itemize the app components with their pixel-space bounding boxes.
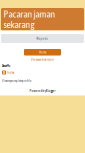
staticText: sekarang [3,19,34,30]
staticText: Pacaran jaman [3,8,55,19]
staticText: About Me [2,64,10,68]
button[interactable]: View web version [29,57,56,62]
staticText: B [3,70,5,75]
staticText: No posts. [36,37,48,40]
button[interactable]: B [2,70,14,74]
staticText: View my complete profile [2,79,31,83]
button[interactable]: View my complete profile [2,78,31,83]
staticText: View web version [31,57,54,61]
button[interactable]: Powered by Blogger [29,89,55,93]
staticText: Indax [7,71,14,74]
staticText: Home [39,50,46,54]
staticText: Powered by Blogger [29,89,55,93]
button[interactable]: Home [24,49,61,55]
